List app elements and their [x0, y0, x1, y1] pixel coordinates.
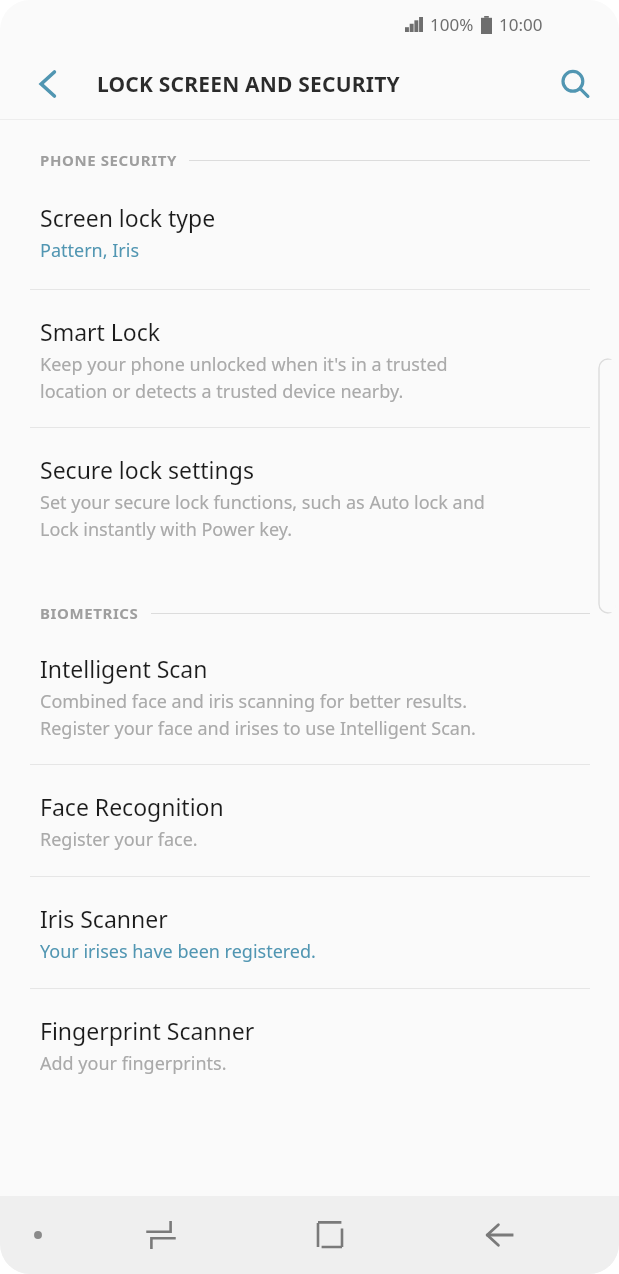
staticText: Iris Scanner	[40, 903, 168, 934]
staticText: Fingerprint Scanner	[40, 1015, 255, 1046]
staticText: LOCK SCREEN AND SECURITY	[97, 70, 400, 99]
staticText: Pattern, Iris	[40, 238, 139, 263]
staticText: BIOMETRICS	[40, 603, 139, 623]
staticText: Your irises have been registered.	[40, 939, 316, 964]
button[interactable]: Back	[415, 1196, 585, 1274]
staticText: Set your secure lock functions, such as …	[40, 490, 485, 541]
staticText: 100%	[430, 13, 474, 36]
staticText: Secure lock settings	[40, 454, 254, 485]
button[interactable]: Iris Scanner	[0, 877, 619, 988]
button[interactable]: Screen lock type	[0, 174, 619, 289]
button[interactable]: Search	[543, 52, 607, 116]
staticText: Combined face and iris scanning for bett…	[40, 689, 476, 740]
staticText: 10:00	[499, 13, 543, 36]
button[interactable]: Fingerprint Scanner	[0, 989, 619, 1100]
staticText: Screen lock type	[40, 202, 216, 233]
staticText: Intelligent Scan	[40, 653, 208, 684]
staticText: PHONE SECURITY	[40, 150, 177, 170]
button[interactable]: Home	[245, 1196, 415, 1274]
button[interactable]: Back	[16, 52, 80, 116]
button[interactable]: Intelligent Scan	[0, 627, 619, 764]
button[interactable]: Secure lock settings	[0, 428, 619, 565]
button[interactable]: Smart Lock	[0, 290, 619, 427]
staticText: Add your fingerprints.	[40, 1051, 227, 1076]
staticText: Keep your phone unlocked when it's in a …	[40, 352, 448, 403]
staticText: Register your face.	[40, 827, 198, 852]
button[interactable]: Face Recognition	[0, 765, 619, 876]
staticText: Face Recognition	[40, 791, 224, 822]
staticText: Smart Lock	[40, 316, 161, 347]
button[interactable]: Recents	[76, 1196, 245, 1274]
